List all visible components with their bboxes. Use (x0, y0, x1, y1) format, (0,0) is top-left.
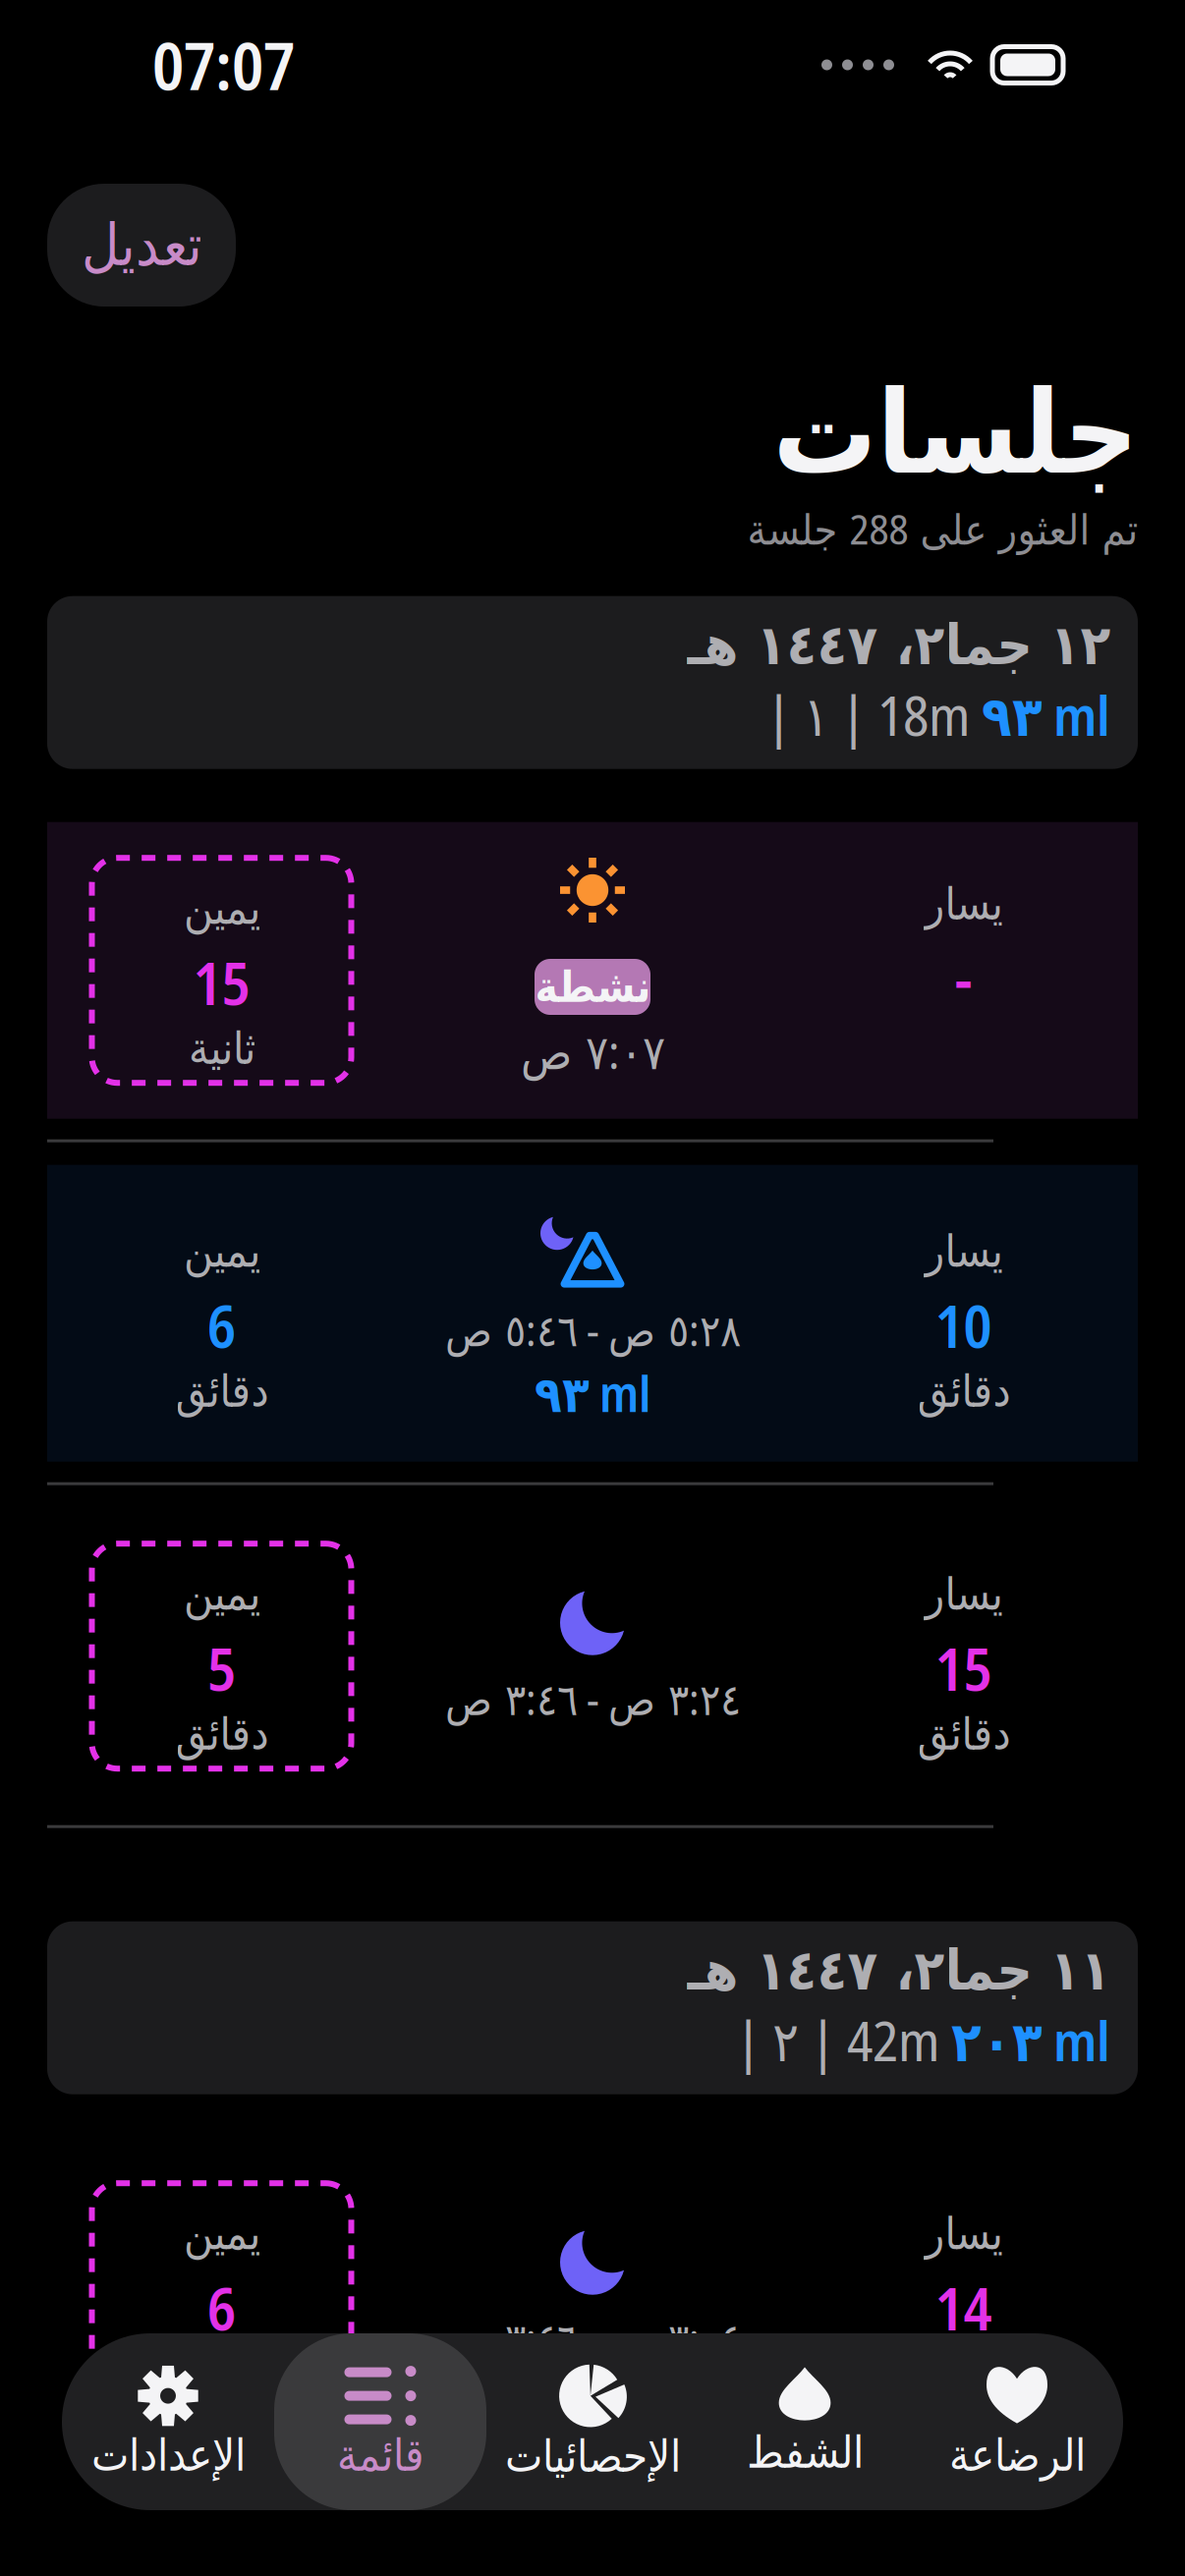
staticText: 10 (935, 1285, 992, 1365)
staticText: 14 (935, 2267, 992, 2348)
staticText: الشفط (746, 2426, 863, 2478)
button[interactable]: الإحصائيات (486, 2333, 699, 2510)
staticText: جلسات (772, 365, 1138, 500)
staticText: يمين (183, 2208, 260, 2260)
staticText: يسار (925, 2208, 1002, 2260)
staticText: ٩٣ ml (535, 1359, 650, 1427)
button[interactable]: ١٢ جما٢، ١٤٤٧ هـ (47, 596, 1138, 769)
button[interactable]: يمين (47, 1508, 1138, 1804)
staticText: يمين (183, 882, 260, 934)
staticText: - (955, 938, 972, 1018)
staticText: ٥:٢٨ ص - ٥:٤٦ ص (445, 1300, 740, 1359)
staticText: الإحصائيات (505, 2430, 680, 2482)
staticText: 6 (207, 1285, 236, 1365)
staticText: | ٢ | 42m (736, 2002, 939, 2077)
staticText: دقائق (917, 2348, 1010, 2400)
staticText: تم العثور على 288 جلسة (747, 500, 1138, 557)
staticText: 15 (193, 942, 250, 1022)
staticText: ٩٣ ml (982, 677, 1110, 752)
staticText: 15 (935, 1628, 992, 1708)
staticText: دقائق (175, 2348, 268, 2400)
button[interactable]: الرضاعة (911, 2333, 1123, 2510)
staticText: قائمة (337, 2429, 424, 2481)
staticText: نشطة (535, 962, 650, 1012)
staticText: يسار (925, 1568, 1002, 1620)
staticText: الإعدادات (91, 2429, 245, 2481)
staticText: يمين (183, 1225, 260, 1277)
staticText: | ١ | 18m (766, 677, 970, 752)
button[interactable]: ١١ جما٢، ١٤٤٧ هـ (47, 1921, 1138, 2094)
staticText: يسار (925, 1225, 1002, 1277)
staticText: ١١ جما٢، ١٤٤٧ هـ (687, 1938, 1110, 2002)
button[interactable]: قائمة (274, 2333, 486, 2510)
staticText: 6 (207, 2267, 236, 2348)
staticText: ٣:٢٤ ص - ٣:٤٦ ص (445, 1669, 740, 1728)
button[interactable]: الإعدادات (62, 2333, 274, 2510)
staticText: يمين (183, 1568, 260, 1620)
button[interactable]: يمين (47, 1165, 1138, 1462)
staticText: ٣:٠٤ ص - ٣:٤٦ ص (445, 2308, 740, 2367)
staticText: 5 (207, 1628, 236, 1708)
staticText: دقائق (917, 1708, 1010, 1760)
staticText: ٧:٠٧ ص (520, 1019, 665, 1083)
button[interactable]: يمين (47, 822, 1138, 1119)
button[interactable]: الشفط (699, 2333, 911, 2510)
staticText: ثانية (188, 1022, 255, 1074)
staticText: ١٢ جما٢، ١٤٤٧ هـ (687, 613, 1110, 677)
staticText: دقائق (175, 1708, 268, 1760)
staticText: دقائق (175, 1365, 268, 1417)
staticText: تعديل (81, 212, 202, 279)
staticText: دقائق (917, 1365, 1010, 1417)
staticText: الرضاعة (949, 2429, 1085, 2481)
button[interactable]: تعديل (47, 184, 236, 307)
staticText: ٢٠٣ ml (951, 2002, 1110, 2077)
staticText: 07:07 (152, 20, 295, 109)
staticText: يسار (925, 878, 1002, 930)
button[interactable]: يمين (47, 2147, 1138, 2444)
